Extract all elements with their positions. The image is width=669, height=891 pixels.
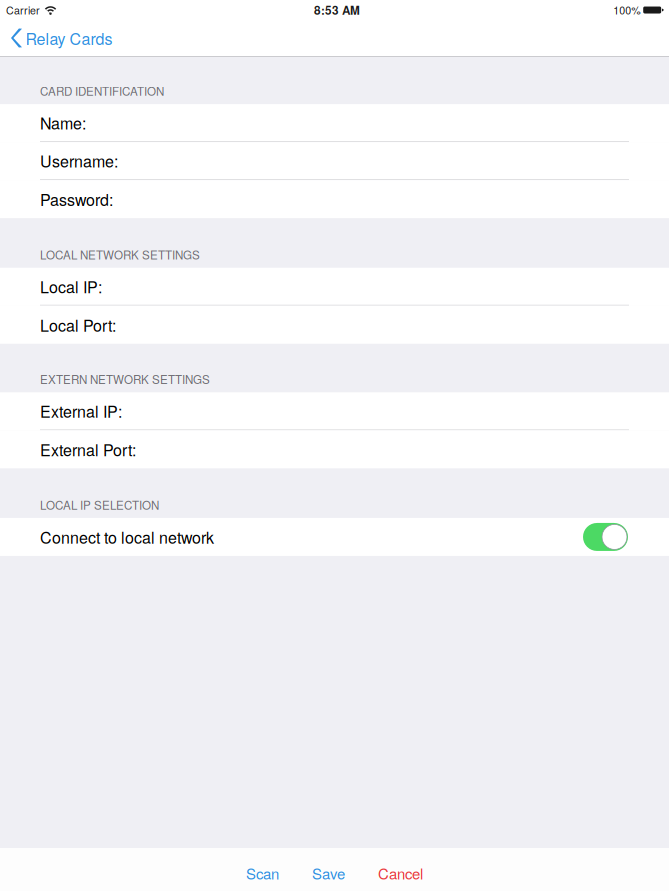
staticText: EXTERN NETWORK SETTINGS <box>40 371 210 387</box>
staticText: 100% <box>613 2 640 18</box>
staticText: Carrier <box>6 2 40 18</box>
button[interactable]: Cancel <box>372 849 429 890</box>
staticText: Save <box>312 862 345 884</box>
button[interactable]: Connect to local network <box>0 518 669 556</box>
staticText: Local Port: <box>40 313 116 336</box>
button[interactable]: Relay Cards <box>0 20 121 56</box>
staticText: Password: <box>40 188 113 211</box>
staticText: Cancel <box>378 862 423 884</box>
staticText: Connect to local network <box>40 525 214 548</box>
staticText: Username: <box>40 149 118 172</box>
staticText: Scan <box>246 862 279 884</box>
staticText: LOCAL IP SELECTION <box>40 496 159 513</box>
button[interactable]: Scan <box>240 849 285 890</box>
staticText: Local IP: <box>40 275 102 298</box>
staticText: LOCAL NETWORK SETTINGS <box>40 246 200 263</box>
staticText: 8:53 AM <box>314 2 360 18</box>
staticText: External Port: <box>40 438 136 461</box>
staticText: External IP: <box>40 399 122 422</box>
staticText: Relay Cards <box>25 26 112 49</box>
staticText: Name: <box>40 111 86 134</box>
staticText: CARD IDENTIFICATION <box>40 82 164 99</box>
button[interactable]: Save <box>306 849 351 890</box>
